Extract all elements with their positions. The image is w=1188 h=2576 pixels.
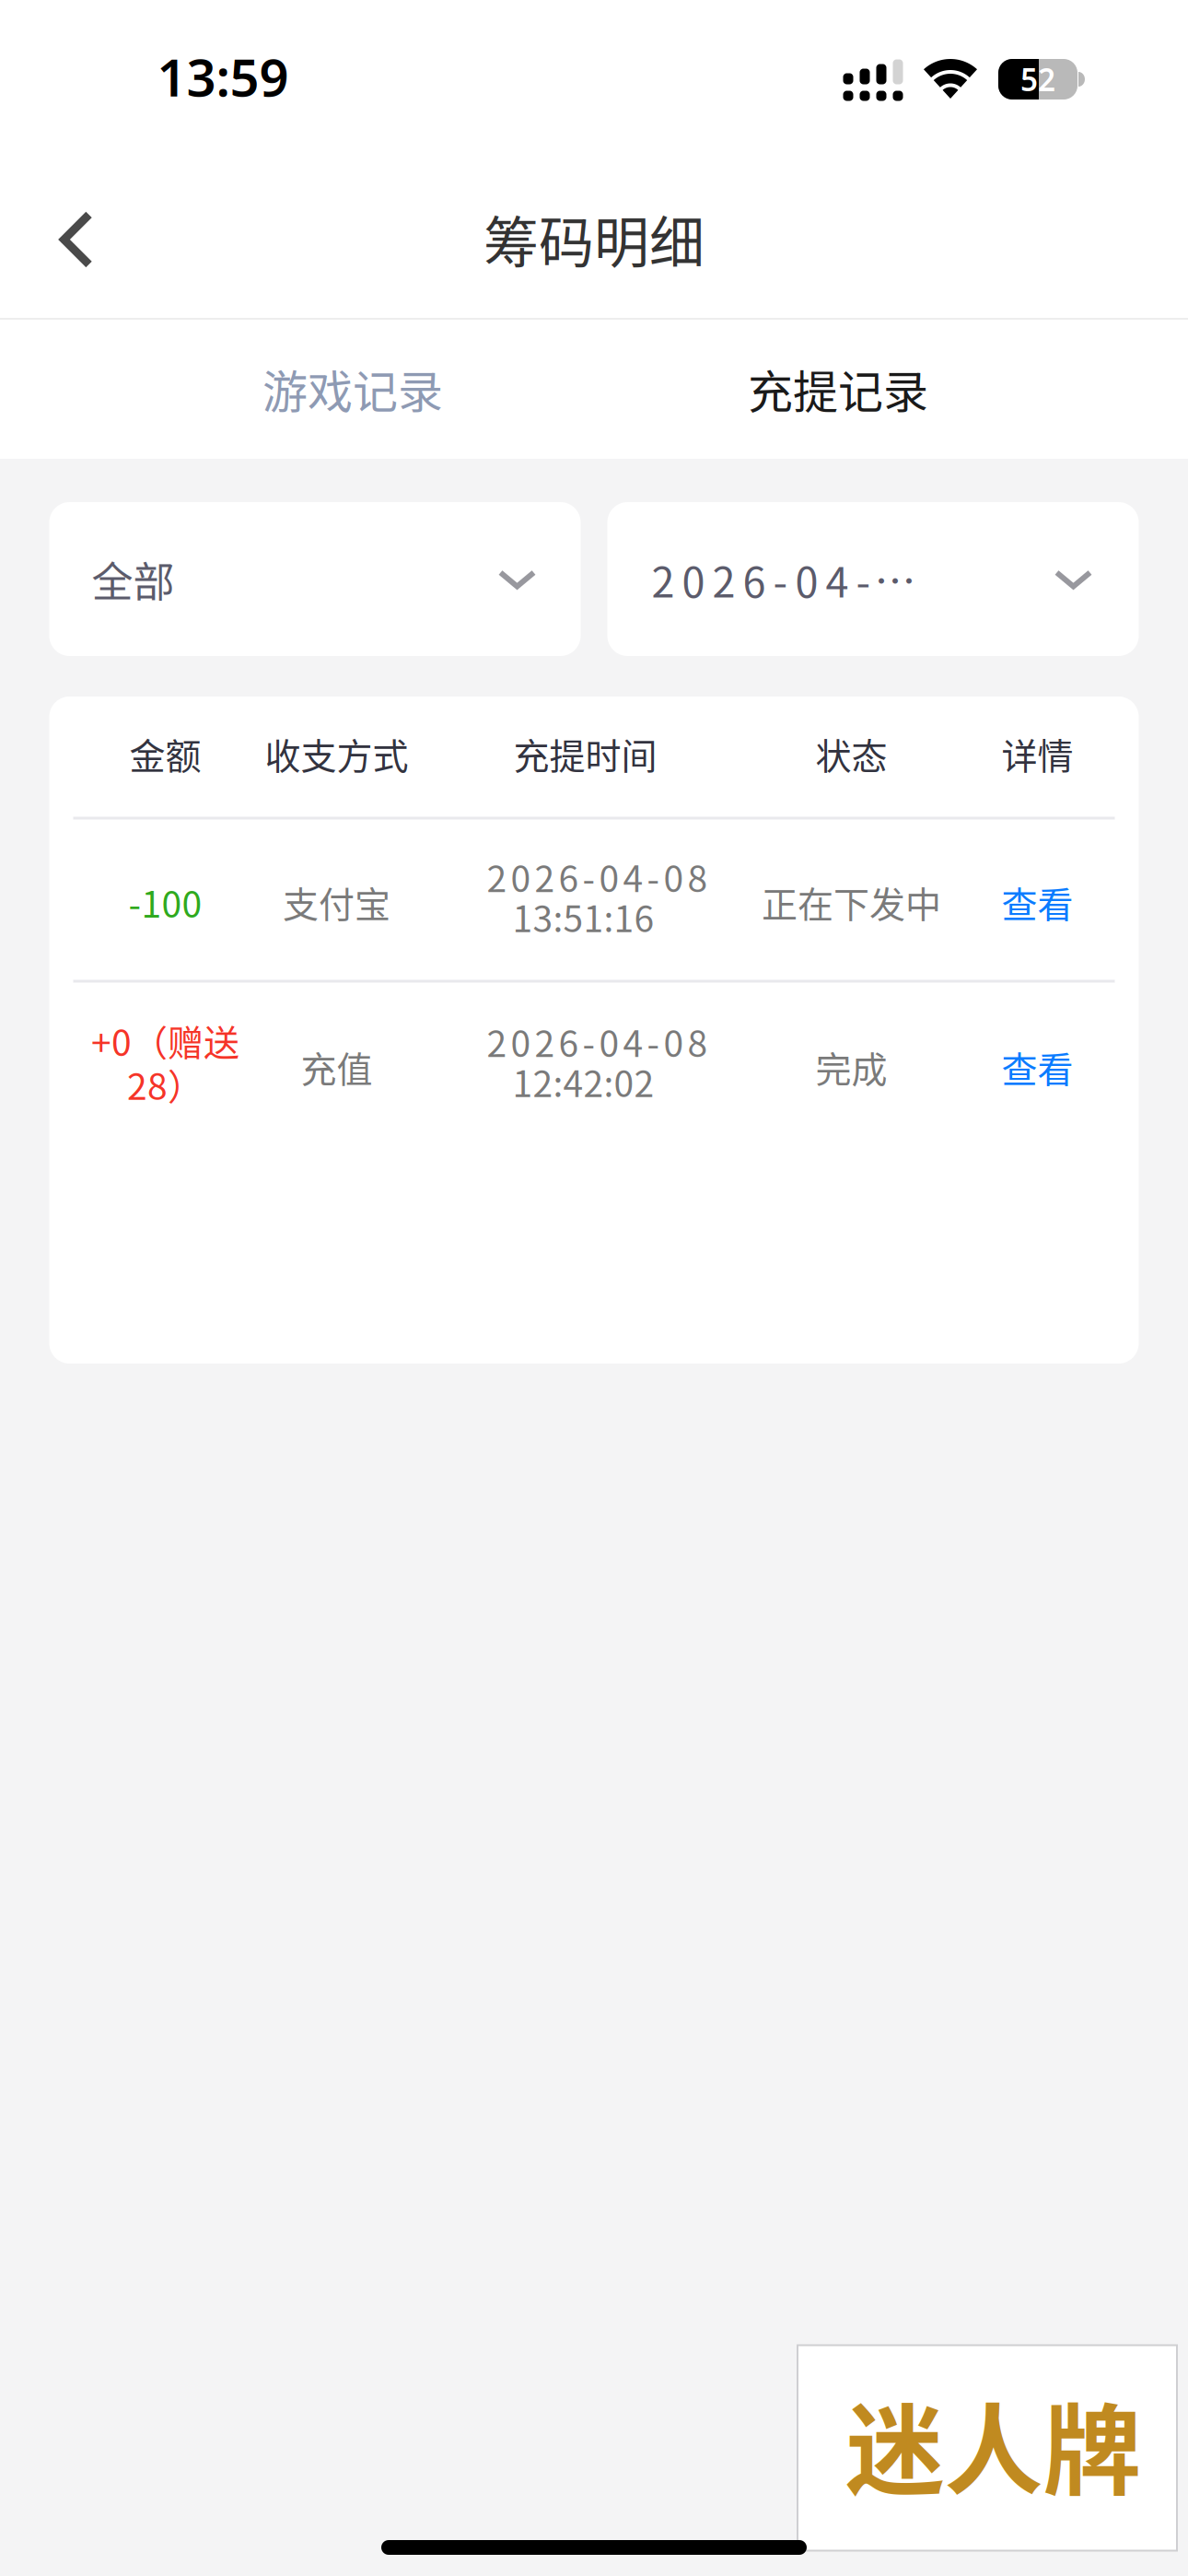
staticText: 支付宝 bbox=[283, 876, 390, 928]
staticText: 查看 bbox=[1002, 1041, 1073, 1093]
staticText: 充提时间 bbox=[513, 728, 657, 780]
staticText: 迷人牌 bbox=[846, 2372, 1141, 2515]
staticText: 筹码明细 bbox=[483, 199, 705, 279]
button[interactable]: 充提记录 bbox=[645, 319, 1031, 458]
staticText: 2026-04-08 bbox=[652, 549, 924, 610]
staticText: 充值 bbox=[301, 1041, 373, 1093]
staticText: 2026-04-08 bbox=[487, 1015, 708, 1067]
staticText: 12:42:02 bbox=[512, 1055, 654, 1107]
staticText: 完成 bbox=[815, 1041, 887, 1093]
staticText: 正在下发中 bbox=[762, 876, 941, 928]
button[interactable]: 游戏记录 bbox=[159, 319, 546, 458]
staticText: 52 bbox=[1020, 59, 1055, 100]
staticText: 查看 bbox=[1002, 876, 1073, 928]
staticText: 游戏记录 bbox=[262, 356, 443, 422]
button[interactable]: Back bbox=[7, 161, 146, 318]
staticText: 金额 bbox=[129, 728, 201, 780]
button[interactable]: 2026-04-08 bbox=[607, 502, 1139, 656]
staticText: 充提记录 bbox=[748, 356, 928, 422]
staticText: 2026-04-08 bbox=[487, 850, 708, 902]
staticText: +0（赠送 bbox=[91, 1014, 239, 1066]
button[interactable]: 查看 bbox=[955, 821, 1120, 983]
staticText: 详情 bbox=[1002, 728, 1073, 780]
button[interactable]: 查看 bbox=[955, 986, 1120, 1147]
button[interactable]: 全部 bbox=[49, 502, 581, 656]
staticText: 收支方式 bbox=[265, 728, 408, 780]
staticText: 28） bbox=[127, 1058, 204, 1110]
staticText: 13:59 bbox=[157, 42, 289, 111]
staticText: 13:51:16 bbox=[512, 890, 654, 943]
staticText: -100 bbox=[128, 876, 202, 928]
staticText: 状态 bbox=[815, 728, 887, 780]
staticText: 全部 bbox=[92, 549, 175, 610]
